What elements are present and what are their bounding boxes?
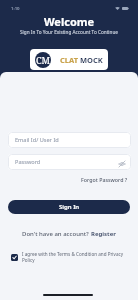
other: Show password: [118, 160, 126, 168]
staticText: 1:10: [11, 5, 20, 11]
staticText: Forgot Password ?: [81, 176, 128, 183]
button[interactable]: I agree with the Terms & Condition and P…: [11, 251, 133, 263]
staticText: Register: [91, 230, 116, 238]
button[interactable]: Forgot Password ?: [79, 173, 130, 186]
staticText: CM: [36, 54, 50, 66]
button[interactable]: Email Id/ User Id: [8, 132, 131, 148]
staticText: I agree with the Terms & Condition and P…: [22, 251, 133, 263]
staticText: Email Id/ User Id: [15, 136, 59, 144]
button[interactable]: Password: [8, 154, 131, 170]
staticText: Sign In To Your Existing Account To Cont…: [0, 29, 138, 35]
staticText: MOCK: [80, 55, 103, 65]
button[interactable]: Sign In: [8, 200, 130, 214]
staticText: CLAT: [60, 55, 78, 65]
staticText: Don't have an account?: [22, 230, 91, 238]
staticText: Password: [15, 158, 41, 166]
staticText: Welcome: [0, 14, 138, 29]
button[interactable]: CM: [30, 49, 108, 70]
staticText: Sign In: [59, 203, 80, 211]
button[interactable]: Register: [91, 230, 116, 238]
